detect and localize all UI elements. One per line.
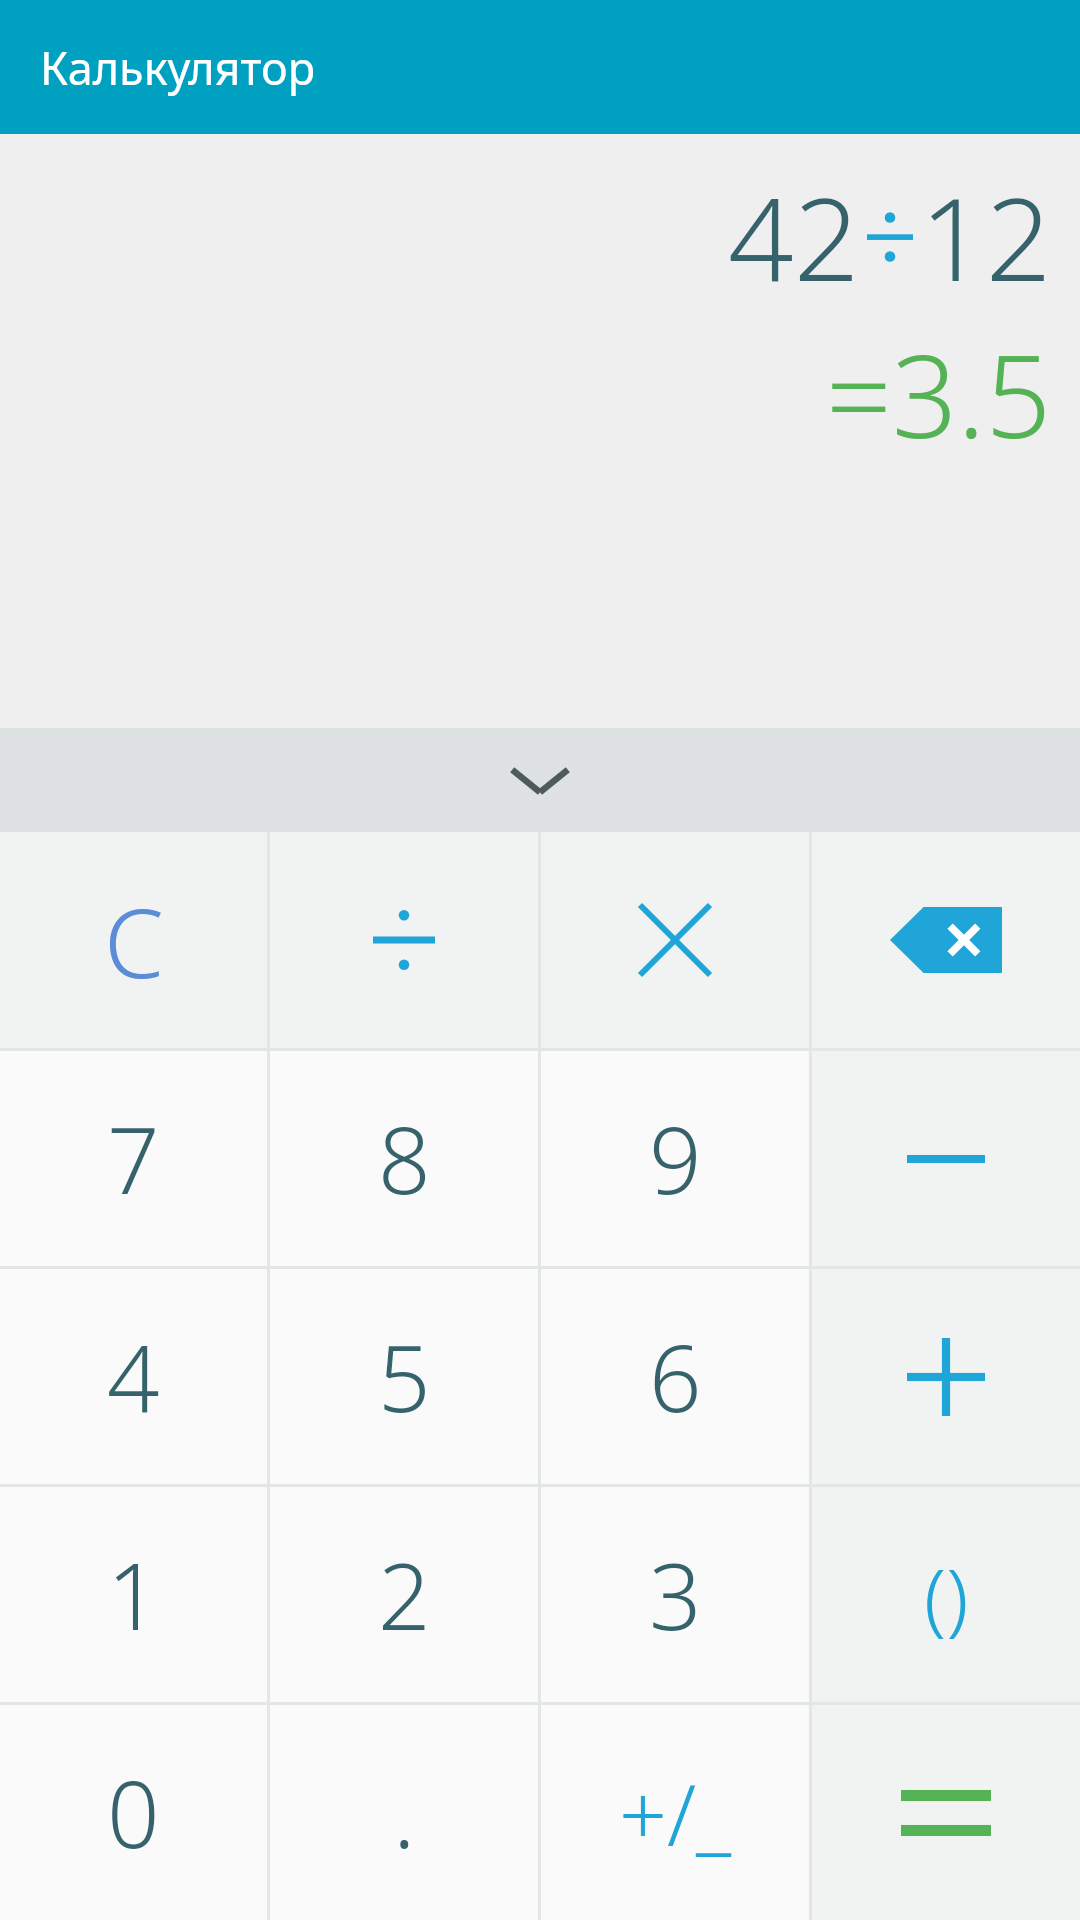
staticText: 42 <box>728 158 860 315</box>
button[interactable]: . <box>270 1705 538 1920</box>
button[interactable]: Backspace <box>812 832 1080 1048</box>
button[interactable]: 2 <box>270 1487 538 1702</box>
button[interactable]: 7 <box>0 1051 267 1266</box>
staticText: 7 <box>107 1096 160 1221</box>
button[interactable]: Minus <box>812 1051 1080 1266</box>
button[interactable]: 1 <box>0 1487 267 1702</box>
button[interactable]: Multiply <box>541 832 809 1048</box>
button[interactable]: 5 <box>270 1269 538 1484</box>
button[interactable]: 6 <box>541 1269 809 1484</box>
staticText: 1 <box>107 1532 160 1657</box>
button[interactable]: 0 <box>0 1705 267 1920</box>
button[interactable]: 8 <box>270 1051 538 1266</box>
staticText: () <box>924 1540 969 1649</box>
staticText: 5 <box>378 1314 431 1439</box>
button[interactable]: Plus <box>812 1269 1080 1484</box>
staticText: 6 <box>649 1314 702 1439</box>
staticText: 3 <box>649 1532 702 1657</box>
staticText: Калькулятор <box>40 37 316 98</box>
button[interactable]: Clear <box>0 832 267 1048</box>
button[interactable]: () <box>812 1487 1080 1702</box>
staticText: 8 <box>378 1096 431 1221</box>
staticText: 2 <box>378 1532 431 1657</box>
button[interactable]: Plus minus <box>541 1705 809 1920</box>
staticText: 4 <box>107 1314 160 1439</box>
button[interactable]: Divide <box>270 832 538 1048</box>
button[interactable]: 3 <box>541 1487 809 1702</box>
staticText: =3.5 <box>826 315 1052 472</box>
button[interactable]: 4 <box>0 1269 267 1484</box>
button[interactable]: Equals <box>812 1705 1080 1920</box>
staticText: 12 <box>920 158 1052 315</box>
staticText: C <box>104 875 164 1006</box>
staticText: +/_ <box>619 1756 732 1870</box>
staticText: 0 <box>107 1750 160 1875</box>
staticText: . <box>393 1750 416 1875</box>
staticText: 9 <box>649 1096 702 1221</box>
button[interactable]: 9 <box>541 1051 809 1266</box>
button[interactable]: Collapse pad <box>0 728 1080 832</box>
